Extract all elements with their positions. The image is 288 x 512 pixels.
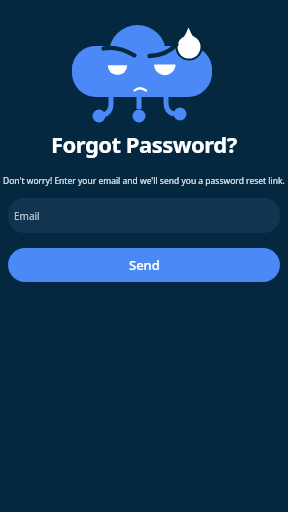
staticText: Email bbox=[14, 209, 40, 223]
button[interactable]: Email bbox=[8, 198, 280, 233]
button[interactable]: Send bbox=[8, 248, 280, 282]
staticText: Don't worry! Enter your email and we'll … bbox=[3, 175, 285, 187]
staticText: Forgot Password? bbox=[51, 129, 237, 159]
staticText: Send bbox=[129, 256, 160, 274]
